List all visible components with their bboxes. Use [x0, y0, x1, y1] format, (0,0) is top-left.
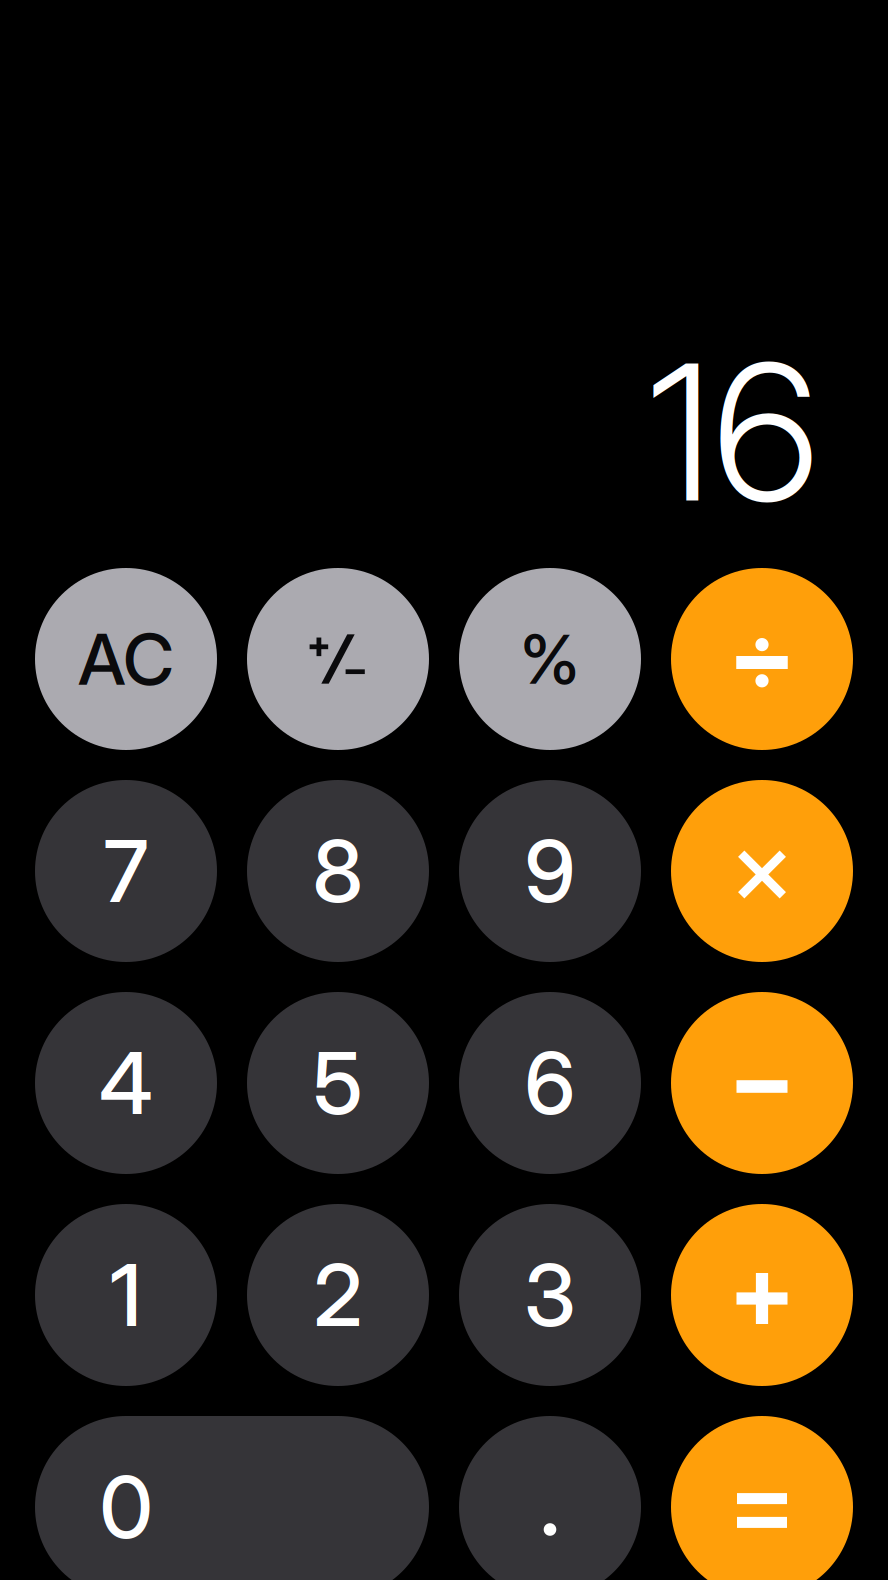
button[interactable]: 6	[459, 992, 641, 1174]
staticText: 8	[312, 819, 363, 923]
button[interactable]: Plus minus	[247, 568, 429, 750]
button[interactable]: Decimal point	[459, 1416, 641, 1580]
staticText: 6	[524, 1031, 575, 1135]
staticText: 4	[99, 1031, 153, 1135]
button[interactable]: 0	[35, 1416, 429, 1580]
button[interactable]: 8	[247, 780, 429, 962]
staticText: AC	[78, 616, 174, 702]
button[interactable]: Plus	[671, 1204, 853, 1386]
staticText: 2	[313, 1243, 362, 1347]
button[interactable]: 3	[459, 1204, 641, 1386]
button[interactable]: 4	[35, 992, 217, 1174]
button[interactable]: AC	[35, 568, 217, 750]
staticText: 3	[524, 1243, 576, 1347]
button[interactable]: 1	[35, 1204, 217, 1386]
button[interactable]: Multiply	[671, 780, 853, 962]
button[interactable]: 7	[35, 780, 217, 962]
staticText: 7	[103, 819, 148, 923]
staticText: 16	[648, 318, 819, 546]
button[interactable]: %	[459, 568, 641, 750]
button[interactable]: 2	[247, 1204, 429, 1386]
button[interactable]: Equals	[671, 1416, 853, 1580]
staticText: 1	[110, 1243, 142, 1347]
button[interactable]: 9	[459, 780, 641, 962]
button[interactable]: 5	[247, 992, 429, 1174]
button[interactable]: Divide	[671, 568, 853, 750]
staticText: 0	[99, 1455, 152, 1559]
staticText: 5	[313, 1031, 363, 1135]
staticText: %	[520, 618, 580, 700]
button[interactable]: Minus	[671, 992, 853, 1174]
staticText: 9	[524, 819, 575, 923]
